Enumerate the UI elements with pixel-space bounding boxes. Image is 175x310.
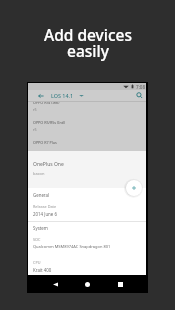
button[interactable]: Add device bbox=[126, 180, 142, 196]
button[interactable]: OPPO R5s (Intl) bbox=[28, 102, 146, 117]
staticText: 2014 June 6 bbox=[33, 211, 57, 217]
staticText: Qualcomm MSM8974AC Snapdragon 801 bbox=[33, 244, 111, 249]
button[interactable]: General bbox=[28, 189, 146, 200]
button[interactable]: System bbox=[28, 222, 146, 233]
staticText: SOC bbox=[33, 237, 41, 242]
button[interactable]: Back bbox=[37, 92, 44, 99]
button[interactable]: Recent apps bbox=[114, 278, 126, 290]
staticText: Release Date bbox=[33, 204, 57, 209]
staticText: Krait 400 bbox=[33, 267, 52, 273]
staticText: System bbox=[33, 225, 48, 231]
staticText: r5 bbox=[33, 127, 37, 132]
staticText: General bbox=[33, 192, 50, 198]
staticText: Add devices easily bbox=[44, 24, 132, 62]
button[interactable]: Back bbox=[49, 278, 61, 290]
button[interactable]: Search bbox=[135, 91, 144, 100]
staticText: LOS 14.1 bbox=[51, 92, 74, 99]
button[interactable]: OPPO R7 Plus bbox=[28, 137, 146, 146]
staticText: OPPO R5s (Intl) bbox=[33, 102, 60, 105]
button[interactable]: SOC bbox=[28, 233, 146, 251]
staticText: OPPO R5/R5s (Intl) bbox=[33, 120, 66, 125]
staticText: 7:08 bbox=[136, 84, 146, 90]
button[interactable]: CPU bbox=[28, 256, 146, 274]
staticText: r5 bbox=[33, 107, 37, 112]
button[interactable]: Home bbox=[81, 278, 93, 290]
staticText: bacon bbox=[33, 171, 45, 176]
button[interactable]: Release Date bbox=[28, 200, 146, 218]
staticText: OPPO R7 Plus bbox=[33, 140, 57, 145]
button[interactable]: OPPO R5/R5s (Intl) bbox=[28, 117, 146, 137]
staticText: OnePlus One bbox=[33, 161, 64, 168]
staticText: CPU bbox=[33, 260, 41, 265]
